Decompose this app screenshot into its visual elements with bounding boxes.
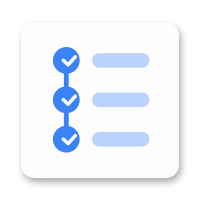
button[interactable]: Checklist <box>0 0 200 200</box>
